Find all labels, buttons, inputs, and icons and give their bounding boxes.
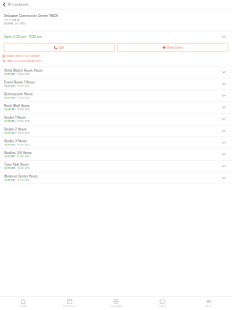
- staticText: All Locations: [7, 2, 28, 6]
- staticText: Open until 11:00 pm: [4, 167, 29, 170]
- staticText: Open until 11:00 pm: [4, 120, 29, 123]
- button[interactable]: Workout Center Hours: [0, 172, 232, 184]
- staticText: ymcacolumbus.org/delaware: [6, 55, 39, 58]
- button[interactable]: Studio 1 Hours: [0, 114, 232, 125]
- staticText: Open until 11:00 pm: [4, 84, 29, 87]
- staticText: Open until 11:00 pm: [4, 178, 29, 181]
- button[interactable]: Programs: [93, 297, 139, 310]
- staticText: Open until 11:00 pm: [4, 155, 29, 158]
- staticText: Directions: [167, 46, 183, 49]
- staticText: Open until 11:00 pm: [4, 96, 29, 99]
- staticText: Studios 3/5 Hours: [4, 151, 32, 155]
- button[interactable]: Directions: [117, 43, 228, 52]
- button[interactable]: Child Watch Room Hours: [0, 67, 232, 78]
- button[interactable]: facebook.com/DelawareYMCA: [3, 59, 42, 63]
- button[interactable]: All Locations: [0, 0, 32, 9]
- staticText: Open until 11:00 pm: [4, 131, 29, 134]
- staticText: Delaware Community Center YMCA: [4, 14, 58, 17]
- button[interactable]: Event Room 1 Hours: [0, 78, 232, 90]
- staticText: Open until 11:00 pm: [4, 73, 29, 76]
- staticText: Open until 11:00 pm: [4, 108, 29, 111]
- button[interactable]: Studios 3/5 Hours: [0, 149, 232, 160]
- staticText: facebook.com/DelawareYMCA: [6, 60, 42, 63]
- staticText: Open 5:30 am - 11:00 pm: [4, 35, 42, 39]
- button[interactable]: Home: [0, 297, 46, 310]
- staticText: Home: [19, 305, 27, 308]
- button[interactable]: ymcacolumbus.org/delaware: [3, 54, 39, 58]
- staticText: Studio 3 Hours: [4, 139, 27, 143]
- button[interactable]: More: [186, 297, 232, 310]
- staticText: Gymnasium Hours: [4, 92, 33, 96]
- staticText: Child Watch Room Hours: [4, 69, 43, 72]
- staticText: Event Room 1 Hours: [4, 81, 35, 84]
- button[interactable]: Call: [4, 43, 114, 52]
- staticText: Studio 2 Hours: [4, 128, 27, 131]
- button[interactable]: Studio 2 Hours: [0, 125, 232, 137]
- staticText: Workout Center Hours: [4, 175, 38, 178]
- staticText: Cards: [159, 305, 166, 308]
- staticText: Rock Wall Hours: [4, 104, 30, 108]
- staticText: Studio 1 Hours: [4, 116, 26, 119]
- staticText: Programs: [110, 305, 122, 308]
- staticText: 1107 S Houk Rd: [4, 19, 19, 21]
- staticText: More: [205, 305, 212, 308]
- button[interactable]: Gymnasium Hours: [0, 90, 232, 101]
- button[interactable]: Teen Hub Hours: [0, 161, 232, 172]
- staticText: Schedule: [63, 305, 77, 308]
- button[interactable]: Cards: [139, 297, 186, 310]
- staticText: DELAWARE, OH 43015: [4, 22, 25, 25]
- staticText: Open until 11:00 pm: [4, 143, 29, 146]
- button[interactable]: Studio 3 Hours: [0, 137, 232, 148]
- button[interactable]: Schedule: [46, 297, 93, 310]
- button[interactable]: Open 5:30 am - 11:00 pm: [0, 31, 232, 42]
- staticText: Call: [58, 46, 64, 49]
- button[interactable]: Rock Wall Hours: [0, 102, 232, 113]
- staticText: Teen Hub Hours: [4, 163, 29, 166]
